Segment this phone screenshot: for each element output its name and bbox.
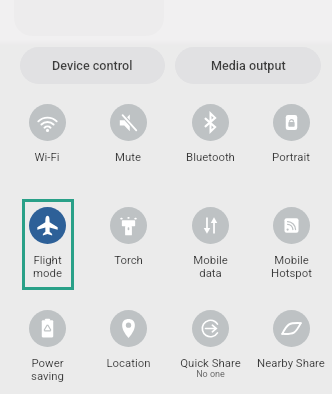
- staticText: Mobile data: [193, 253, 228, 279]
- button[interactable]: Mute: [110, 104, 147, 141]
- staticText: Media output: [211, 58, 286, 73]
- button[interactable]: Portrait: [273, 104, 310, 141]
- button[interactable]: Nearby Share: [273, 310, 310, 347]
- staticText: Nearby Share: [257, 356, 325, 369]
- button[interactable]: Power saving: [29, 310, 66, 347]
- button[interactable]: Flight mode: [29, 207, 66, 244]
- staticText: Power saving: [31, 356, 64, 382]
- staticText: Quick Share: [180, 356, 241, 369]
- button[interactable]: Torch: [110, 207, 147, 244]
- button[interactable]: Quick Share: [192, 310, 229, 347]
- staticText: Torch: [114, 253, 143, 266]
- staticText: Mobile Hotspot: [271, 253, 312, 279]
- staticText: Location: [106, 356, 151, 369]
- button[interactable]: Location: [110, 310, 147, 347]
- staticText: Portrait: [272, 150, 310, 163]
- staticText: No one: [196, 369, 225, 380]
- staticText: Wi-Fi: [34, 150, 60, 163]
- button[interactable]: Media output: [175, 47, 321, 84]
- button[interactable]: Mobile data: [192, 207, 229, 244]
- button[interactable]: Mobile Hotspot: [273, 207, 310, 244]
- button[interactable]: Bluetooth: [192, 104, 229, 141]
- staticText: Device control: [52, 58, 133, 73]
- button[interactable]: Device control: [20, 47, 165, 84]
- staticText: Mute: [115, 150, 141, 163]
- button[interactable]: Wi-Fi: [29, 104, 66, 141]
- staticText: Flight mode: [33, 253, 62, 279]
- staticText: Bluetooth: [186, 150, 235, 163]
